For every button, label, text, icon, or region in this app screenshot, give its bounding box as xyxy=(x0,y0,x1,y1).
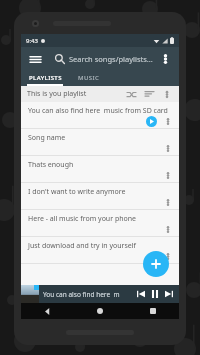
staticText: 9:43 xyxy=(26,37,38,45)
button[interactable]: More options xyxy=(160,88,173,101)
button[interactable]: Add xyxy=(143,251,169,277)
staticText: Thats enough xyxy=(28,160,74,170)
button[interactable]: Song name xyxy=(21,129,179,156)
button[interactable]: Previous xyxy=(134,287,148,301)
staticText: Just download and try in yourself xyxy=(28,241,136,251)
staticText: You can also find here music from SD car… xyxy=(28,106,168,116)
button[interactable]: PLAYLISTS xyxy=(27,74,64,82)
staticText: Song name xyxy=(28,133,66,143)
staticText: You can also find here m xyxy=(43,290,134,299)
button[interactable]: Track options xyxy=(162,142,174,154)
button[interactable]: Just download and try in yourself xyxy=(21,237,179,264)
staticText: Search songs/playlists... xyxy=(69,54,153,64)
button[interactable]: Pause xyxy=(148,287,162,301)
button[interactable]: I don't want to write anymore xyxy=(21,183,179,210)
button[interactable]: Track options xyxy=(162,223,174,235)
button[interactable]: Track options xyxy=(162,169,174,181)
button[interactable]: You can also find here m xyxy=(21,285,179,303)
button[interactable]: Back xyxy=(21,303,73,319)
button[interactable]: Recent apps xyxy=(126,303,179,319)
button[interactable]: Search songs/playlists... xyxy=(55,54,157,64)
staticText: I don't want to write anymore xyxy=(28,187,126,197)
staticText: PLAYLISTS xyxy=(29,74,62,82)
button[interactable]: Track options xyxy=(162,115,174,127)
button[interactable]: Sort xyxy=(143,88,156,101)
button[interactable]: Home xyxy=(73,303,126,319)
staticText: Here - all music from your phone xyxy=(28,214,137,224)
button[interactable]: More options xyxy=(157,51,173,67)
button[interactable]: Open navigation drawer xyxy=(27,51,43,67)
button[interactable]: Track options xyxy=(162,196,174,208)
button[interactable]: Next xyxy=(162,287,176,301)
button[interactable]: Thats enough xyxy=(21,156,179,183)
button[interactable]: Shuffle xyxy=(125,88,138,101)
button[interactable]: You can also find here music from SD car… xyxy=(21,102,179,129)
button[interactable]: Track options xyxy=(162,250,174,262)
staticText: MUSIC xyxy=(78,74,100,82)
button[interactable]: Play xyxy=(146,116,157,127)
staticText: This is you playlist xyxy=(27,89,87,99)
button[interactable]: Here - all music from your phone xyxy=(21,210,179,237)
button[interactable]: MUSIC xyxy=(76,74,102,82)
